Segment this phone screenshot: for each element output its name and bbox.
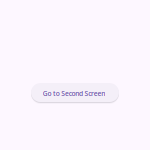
- staticText: Go to Second Screen: [43, 89, 105, 98]
- button[interactable]: Go to Second Screen: [31, 83, 119, 102]
